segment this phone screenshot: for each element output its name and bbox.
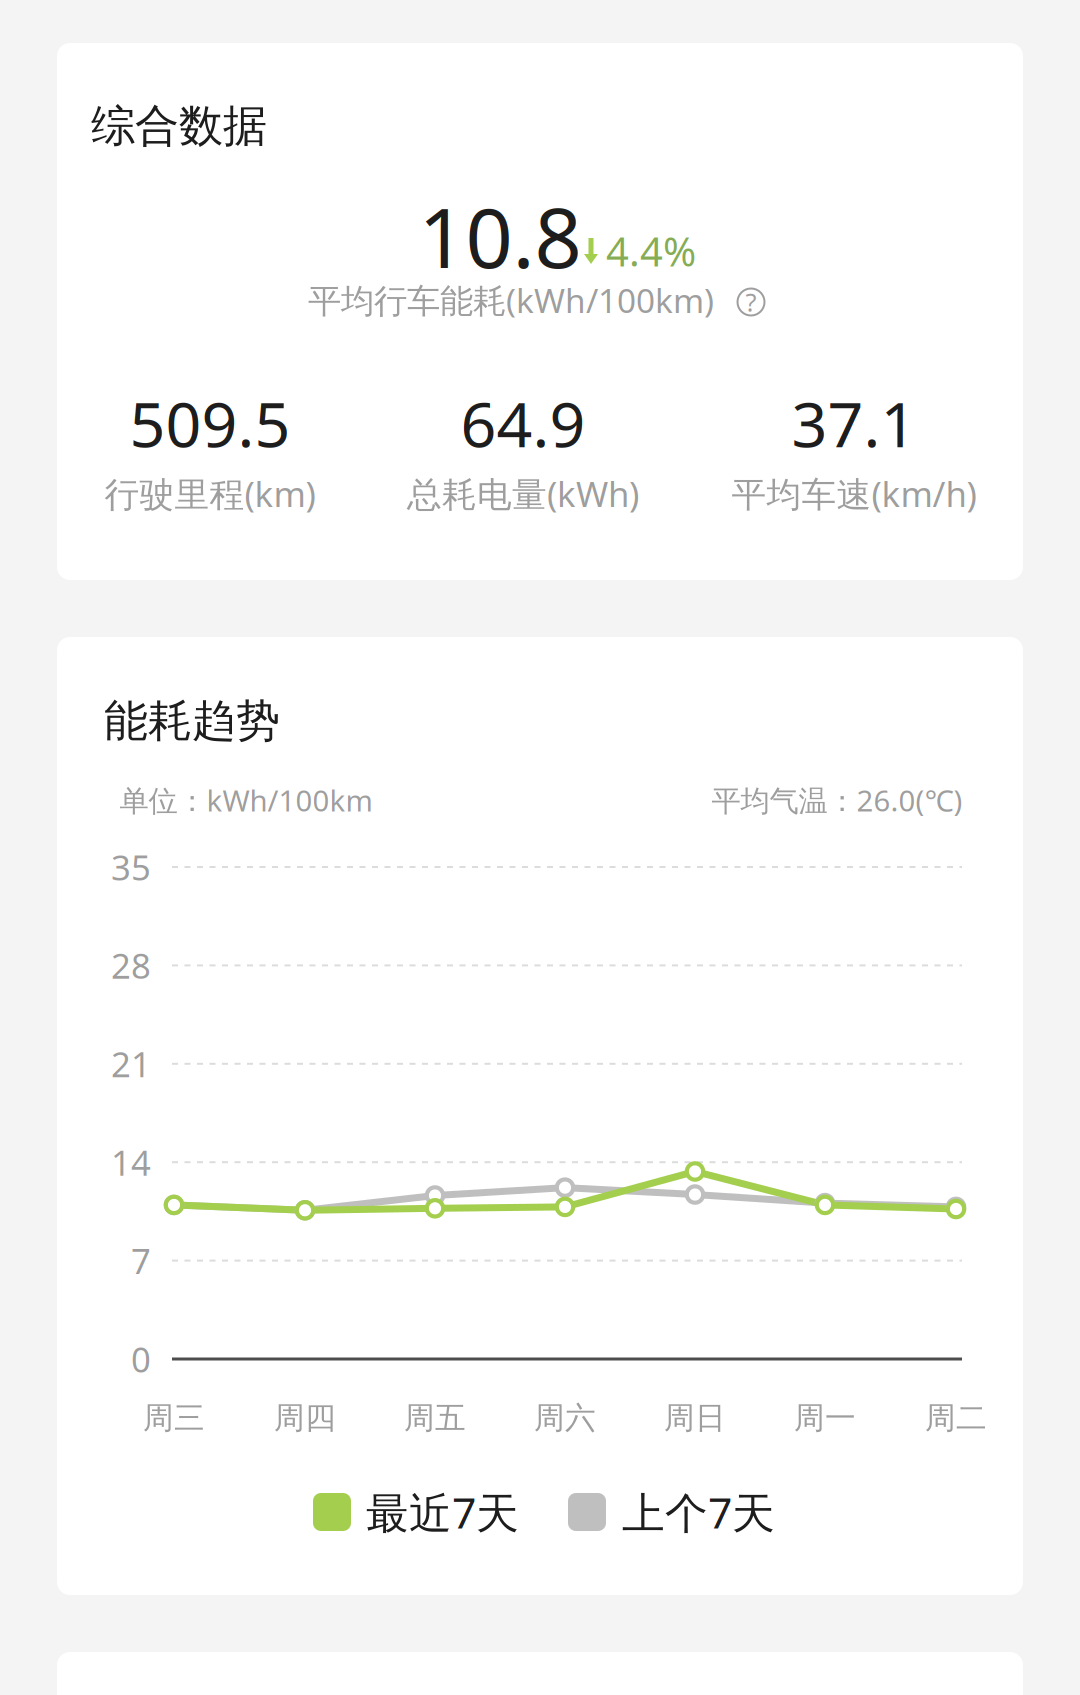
staticText: 上个7天 — [622, 1484, 775, 1540]
staticText: 单位：kWh/100km — [119, 780, 372, 819]
staticText: 周五 — [404, 1399, 466, 1437]
button[interactable]: 上个7天 — [568, 1484, 775, 1540]
staticText: 0 — [131, 1336, 151, 1382]
staticText: 周一 — [794, 1399, 856, 1437]
staticText: 平均车速(km/h) — [731, 471, 976, 517]
staticText: 28 — [111, 942, 151, 988]
staticText: 最近7天 — [366, 1484, 519, 1540]
staticText: 总耗电量(kWh) — [407, 471, 639, 517]
staticText: ? — [745, 285, 756, 319]
button[interactable]: 关于平均行车能耗 — [737, 288, 765, 316]
staticText: 14 — [111, 1139, 151, 1185]
staticText: 35 — [111, 844, 151, 890]
staticText: 4.4% — [606, 224, 696, 277]
staticText: 周二 — [925, 1399, 987, 1437]
staticText: 能耗趋势 — [104, 694, 280, 748]
staticText: 周日 — [664, 1399, 726, 1437]
staticText: 综合数据 — [91, 99, 267, 153]
staticText: 37.1 — [791, 381, 916, 465]
staticText: 21 — [111, 1041, 151, 1087]
staticText: 10.8 — [418, 181, 581, 291]
staticText: 509.5 — [129, 381, 290, 465]
staticText: 平均行车能耗(kWh/100km) — [308, 278, 714, 322]
button[interactable]: 最近7天 — [313, 1484, 519, 1540]
staticText: 周三 — [143, 1399, 205, 1437]
staticText: 7 — [131, 1238, 151, 1284]
staticText: 周四 — [274, 1399, 336, 1437]
staticText: 64.9 — [460, 381, 585, 465]
staticText: 周六 — [534, 1399, 596, 1437]
staticText: 行驶里程(km) — [104, 471, 315, 517]
staticText: 平均气温：26.0(℃) — [711, 780, 962, 819]
